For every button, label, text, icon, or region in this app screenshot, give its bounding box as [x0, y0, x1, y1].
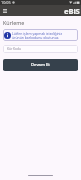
staticText: Kür Kodu [7, 47, 21, 51]
staticText: Lütfen işlem yapmak istediğiniz ürünün b… [12, 31, 63, 40]
button[interactable]: eBiS [64, 6, 80, 16]
staticText: eBiS [64, 6, 80, 16]
button[interactable]: Kür Kodu [3, 45, 78, 53]
staticText: Devam Et [31, 62, 50, 68]
staticText: Kürleme [3, 19, 25, 26]
button[interactable]: Menu [2, 8, 8, 14]
button[interactable]: Devam Et [3, 59, 78, 71]
staticText: 10:05 [1, 0, 11, 5]
